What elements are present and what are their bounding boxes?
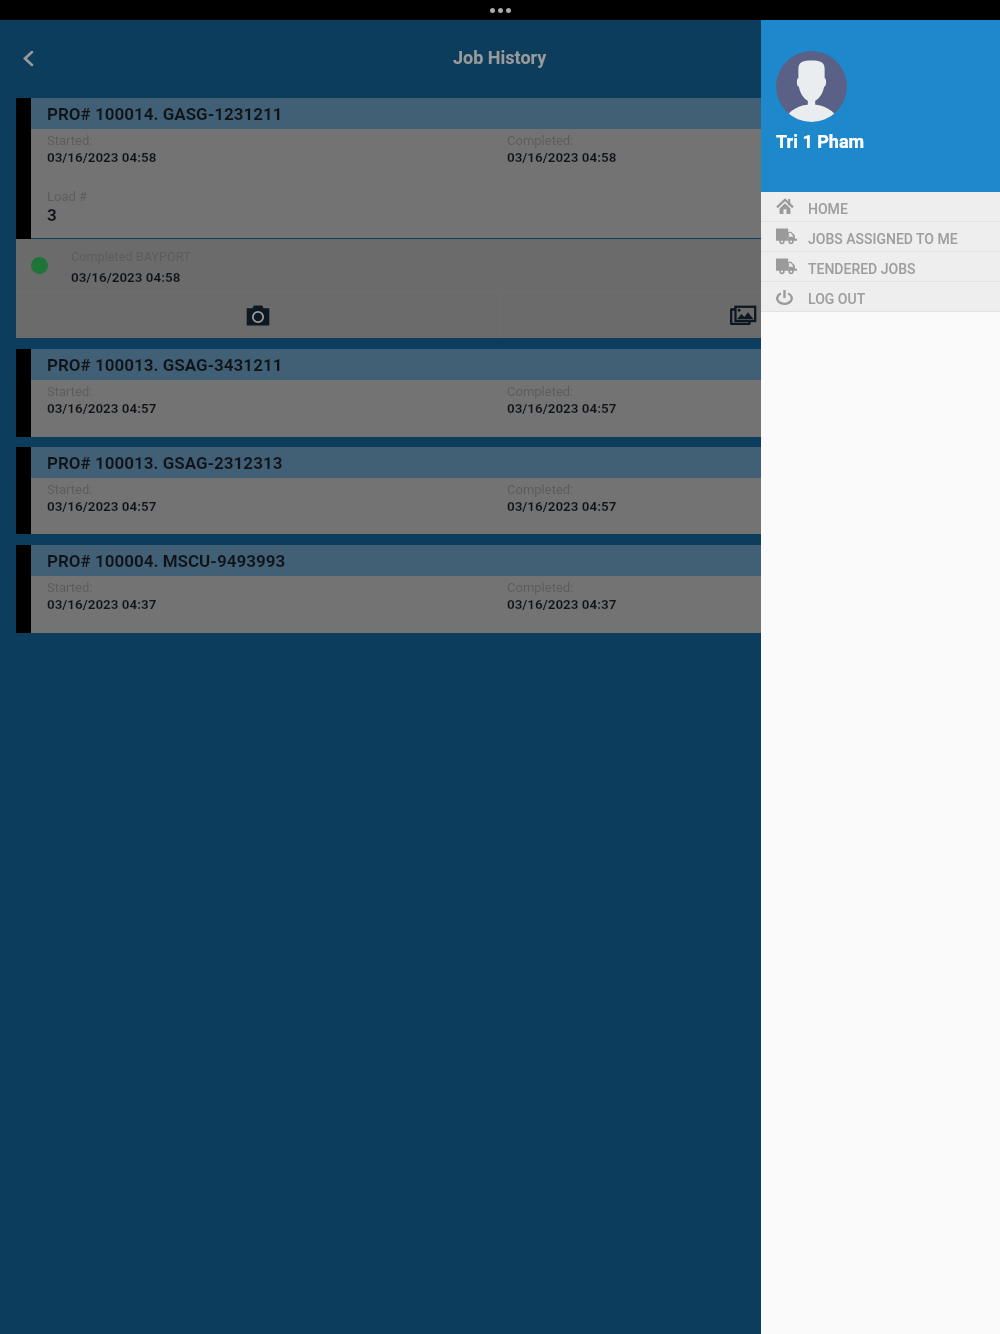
staticText: HOME: [808, 201, 848, 217]
button[interactable]: PRO# 100014. GASG-1231211: [16, 98, 984, 338]
staticText: Started:: [47, 580, 93, 595]
staticText: 03/16/2023 04:57: [47, 499, 157, 515]
staticText: 03/16/2023 04:57: [507, 401, 617, 417]
staticText: PRO# 100013. GSAG-2312313: [47, 453, 283, 473]
button[interactable]: LOG OUT: [761, 282, 1000, 312]
staticText: LOG OUT: [808, 291, 866, 307]
staticText: 03/16/2023 04:37: [47, 597, 157, 613]
staticText: Job History: [453, 47, 547, 68]
staticText: 03/16/2023 04:58: [47, 150, 157, 166]
staticText: 03/16/2023 04:58: [71, 270, 181, 286]
staticText: PRO# 100014. GASG-1231211: [47, 104, 283, 124]
button[interactable]: PRO# 100013. GSAG-3431211: [16, 349, 984, 437]
button[interactable]: JOBS ASSIGNED TO ME: [761, 222, 1000, 252]
staticText: 03/16/2023 04:58: [507, 150, 617, 166]
staticText: Tri 1 Pham: [776, 131, 865, 152]
button[interactable]: Take photo: [16, 293, 499, 338]
staticText: Completed:: [507, 580, 574, 595]
staticText: 03/16/2023 04:57: [507, 499, 617, 515]
staticText: TENDERED JOBS: [808, 261, 916, 277]
button[interactable]: PRO# 100004. MSCU-9493993: [16, 545, 984, 633]
button[interactable]: View photos: [500, 293, 984, 338]
staticText: PRO# 100004. MSCU-9493993: [47, 551, 286, 571]
staticText: 03/16/2023 04:57: [47, 401, 157, 417]
staticText: Started:: [47, 133, 93, 148]
staticText: Started:: [47, 482, 93, 497]
staticText: Completed:: [507, 133, 574, 148]
staticText: Load #: [47, 189, 88, 204]
button[interactable]: TENDERED JOBS: [761, 252, 1000, 282]
staticText: Started:: [47, 384, 93, 399]
button[interactable]: Back: [8, 39, 48, 79]
button[interactable]: HOME: [761, 192, 1000, 222]
staticText: Completed BAYPORT: [71, 249, 191, 264]
staticText: 3: [47, 205, 57, 225]
staticText: Completed:: [507, 482, 574, 497]
staticText: PRO# 100013. GSAG-3431211: [47, 355, 283, 375]
button[interactable]: PRO# 100013. GSAG-2312313: [16, 447, 984, 534]
staticText: JOBS ASSIGNED TO ME: [808, 231, 958, 247]
staticText: Completed:: [507, 384, 574, 399]
staticText: 03/16/2023 04:37: [507, 597, 617, 613]
